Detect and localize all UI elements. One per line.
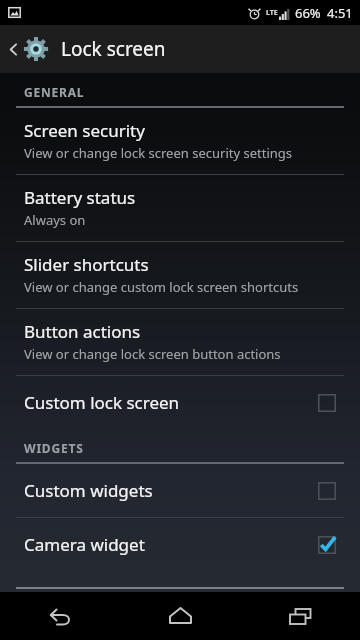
staticText: Custom lock screen: [24, 391, 318, 414]
staticText: View or change custom lock screen shortc…: [24, 278, 299, 296]
staticText: Button actions: [24, 320, 141, 343]
staticText: View or change lock screen security sett…: [24, 144, 292, 162]
button[interactable]: Slider shortcuts: [0, 242, 360, 308]
staticText: LTE: [266, 8, 278, 18]
staticText: Custom widgets: [24, 479, 318, 502]
staticText: Battery status: [24, 186, 136, 209]
button[interactable]: Custom widgets: [0, 464, 360, 517]
button[interactable]: Custom lock screen: [0, 376, 360, 429]
button[interactable]: Screen security: [0, 108, 360, 174]
staticText: Lock screen: [61, 36, 166, 62]
button[interactable]: Home: [120, 592, 240, 640]
staticText: GENERAL: [24, 84, 85, 100]
button[interactable]: Battery status: [0, 175, 360, 241]
staticText: Camera widget: [24, 533, 318, 556]
button[interactable]: Button actions: [0, 309, 360, 375]
staticText: 66%: [295, 4, 321, 22]
button[interactable]: Back: [0, 592, 120, 640]
button[interactable]: Recent apps: [240, 592, 360, 640]
staticText: Screen security: [24, 119, 145, 142]
staticText: 4:51: [327, 4, 353, 22]
button[interactable]: Camera widget: [0, 518, 360, 571]
staticText: View or change lock screen button action…: [24, 345, 281, 363]
staticText: Slider shortcuts: [24, 253, 149, 276]
staticText: WIDGETS: [24, 440, 84, 456]
button[interactable]: Navigate up: [0, 25, 360, 73]
staticText: Always on: [24, 211, 86, 229]
